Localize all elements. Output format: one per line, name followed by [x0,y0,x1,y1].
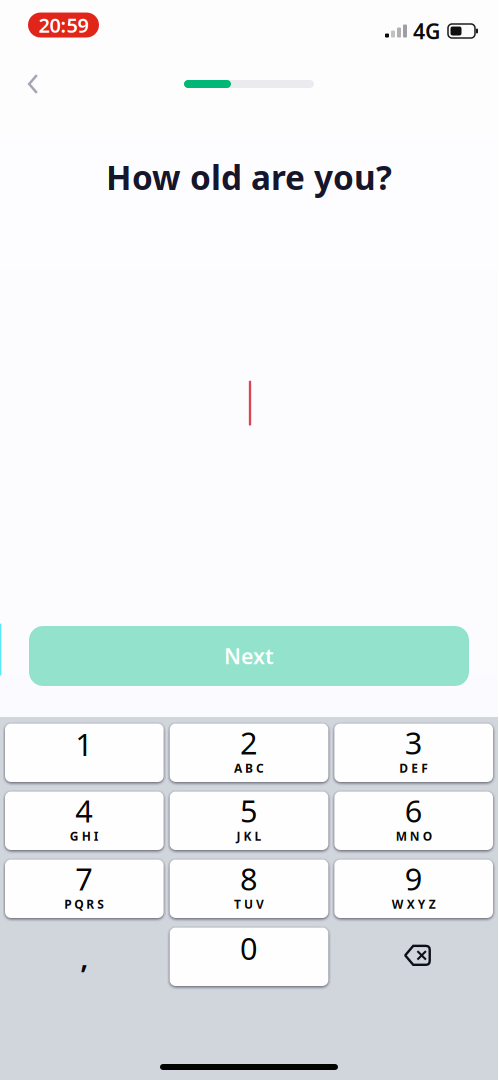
button[interactable]: 9 [334,859,493,918]
staticText: , [80,937,88,976]
button[interactable]: Next [29,626,469,686]
staticText: B [245,760,253,776]
staticText: 9 [405,858,423,899]
staticText: E [411,760,418,776]
staticText: C [256,760,264,776]
staticText: F [421,760,428,776]
staticText: R [86,896,94,912]
button[interactable]: Delete [334,927,493,986]
staticText: Next [224,642,274,670]
staticText: 0 [240,928,258,968]
staticText: X [407,896,415,912]
button[interactable]: Comma [5,927,164,986]
staticText: Y [418,896,426,912]
staticText: A [234,760,242,776]
button[interactable]: 7 [5,859,164,918]
staticText: 8 [240,858,258,899]
staticText: 7 [75,858,93,899]
staticText: 20:59 [38,12,88,38]
staticText: W [392,896,404,912]
staticText: How old are you? [106,155,392,199]
staticText: L [254,828,261,844]
button[interactable]: 2 [170,723,328,782]
button[interactable]: 5 [170,791,328,850]
staticText: 4G [413,17,440,45]
staticText: 6 [405,790,423,831]
staticText: 4 [75,790,93,831]
staticText: Z [429,896,436,912]
staticText: T [234,896,241,912]
button[interactable]: 8 [170,859,328,918]
staticText: N [410,828,420,844]
staticText: H [82,828,91,844]
staticText: V [256,896,264,912]
button[interactable]: 6 [334,791,493,850]
button[interactable]: 3 [334,723,493,782]
staticText: Q [74,896,83,912]
button[interactable]: 1 [5,723,164,782]
staticText: 5 [240,790,258,831]
staticText: K [243,828,251,844]
staticText: D [399,760,408,776]
button[interactable]: Back [12,62,54,106]
staticText: 1 [75,724,93,764]
staticText: S [97,896,104,912]
button[interactable]: 4 [5,791,164,850]
staticText: O [423,828,432,844]
staticText: 2 [240,722,258,763]
staticText: U [244,896,253,912]
staticText: J [236,828,240,844]
staticText: M [396,828,407,844]
button[interactable]: 0 [170,927,328,986]
staticText: 3 [405,722,423,763]
staticText: P [64,896,71,912]
staticText: I [94,828,99,844]
staticText: G [70,828,79,844]
